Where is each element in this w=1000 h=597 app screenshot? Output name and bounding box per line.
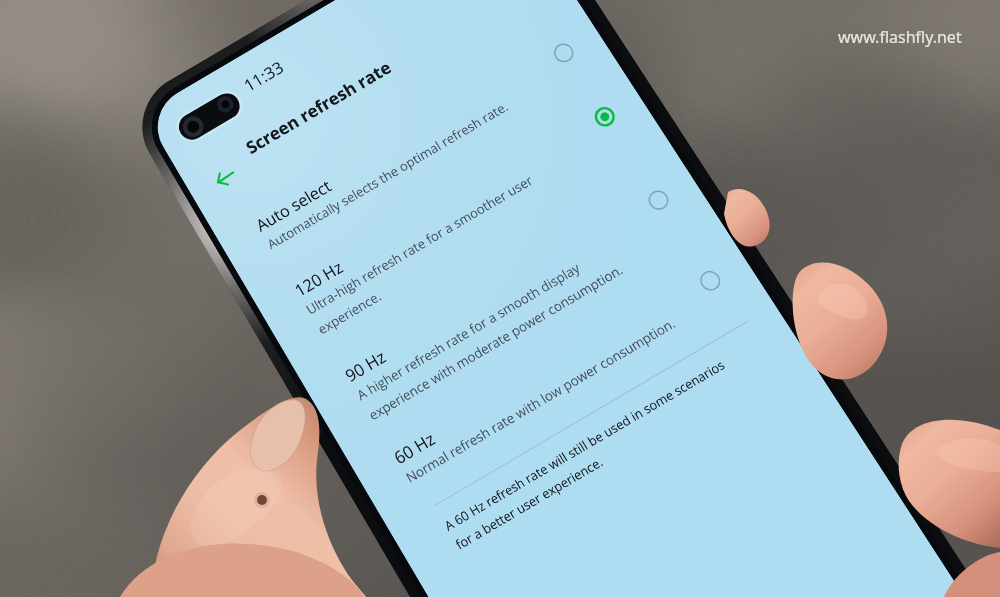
- staticText: 120 Hz: [290, 256, 347, 302]
- staticText: Ultra-high refresh rate for a smoother u…: [302, 170, 536, 318]
- staticText: Screen refresh rate: [241, 55, 396, 159]
- staticText: 11:33: [239, 55, 288, 96]
- staticText: experience with moderate power consumpti…: [365, 260, 626, 423]
- staticText: 90 Hz: [341, 345, 390, 387]
- staticText: A 60 Hz refresh rate will still be used …: [441, 355, 728, 534]
- button[interactable]: Navigate back: [201, 153, 251, 202]
- staticText: Normal refresh rate with low power consu…: [402, 313, 678, 486]
- staticText: Automatically selects the optimal refres…: [264, 97, 511, 252]
- button[interactable]: 120 Hz: [244, 61, 671, 367]
- staticText: Auto select: [252, 174, 336, 236]
- button[interactable]: 60 Hz: [342, 223, 765, 516]
- staticText: for a better user experience.: [452, 452, 606, 553]
- staticText: A higher refresh rate for a smooth displ…: [353, 258, 583, 403]
- staticText: www.flashfly.net: [838, 26, 962, 48]
- staticText: experience.: [314, 286, 384, 337]
- button[interactable]: Auto select: [205, 0, 616, 281]
- button[interactable]: 90 Hz: [293, 143, 726, 454]
- staticText: 60 Hz: [389, 427, 439, 469]
